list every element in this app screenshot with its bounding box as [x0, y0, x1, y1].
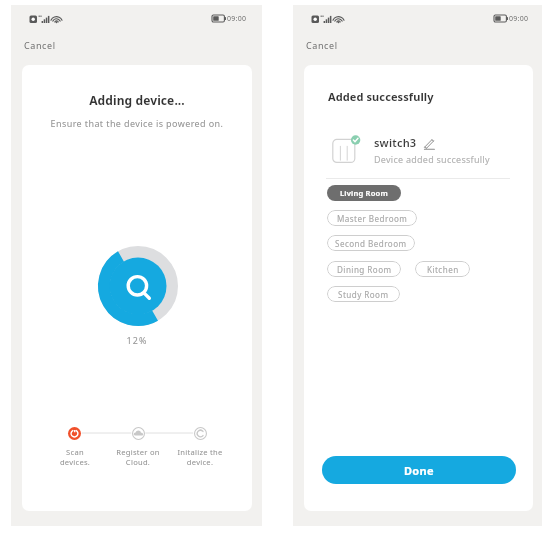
staticText: Register on Cloud. [100, 447, 176, 467]
staticText: Cancel [24, 39, 56, 51]
button[interactable]: Rename device [422, 137, 436, 151]
button[interactable]: Done [322, 456, 516, 484]
staticText: Master Bedroom [337, 213, 408, 224]
staticText: 09:00 [509, 14, 529, 24]
staticText: 09:00 [227, 14, 247, 24]
staticText: Second Bedroom [335, 238, 407, 249]
button[interactable]: Living Room [327, 185, 401, 201]
staticText: 12% [22, 334, 252, 346]
button[interactable]: Cancel [304, 37, 340, 53]
button[interactable]: Master Bedroom [327, 210, 417, 226]
staticText: Device added successfully [374, 153, 490, 165]
staticText: Initalize the device. [162, 447, 238, 467]
staticText: Living Room [340, 188, 388, 198]
staticText: Kitchen [427, 264, 459, 275]
staticText: Cancel [306, 39, 338, 51]
staticText: Done [404, 463, 434, 478]
button[interactable]: Cancel [22, 37, 58, 53]
button[interactable]: Study Room [327, 286, 400, 302]
staticText: Study Room [338, 289, 389, 300]
staticText: Adding device... [22, 92, 252, 108]
staticText: Ensure that the device is powered on. [22, 117, 252, 129]
staticText: Dining Room [337, 264, 392, 275]
staticText: switch3 [374, 135, 417, 150]
button[interactable]: Second Bedroom [327, 235, 415, 251]
staticText: Scan devices. [37, 447, 113, 467]
button[interactable]: Dining Room [327, 261, 401, 277]
staticText: Added successfully [328, 89, 434, 104]
button[interactable]: Kitchen [415, 261, 470, 277]
